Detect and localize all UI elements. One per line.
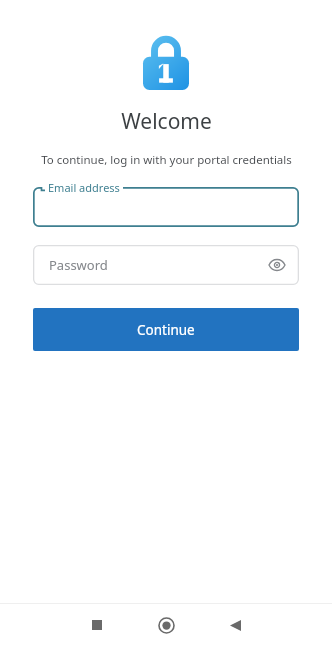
button[interactable]: Show password: [266, 254, 288, 276]
staticText: To continue, log in with your portal cre…: [41, 152, 292, 168]
button[interactable]: Back: [220, 610, 250, 640]
button[interactable]: Password: [33, 245, 299, 285]
staticText: Welcome: [121, 107, 212, 136]
staticText: Email address: [48, 180, 120, 195]
staticText: Password: [49, 256, 108, 274]
button[interactable]: Email address: [33, 187, 299, 227]
button[interactable]: Home: [150, 609, 182, 641]
button[interactable]: Continue: [33, 308, 299, 351]
button[interactable]: Recent apps: [82, 610, 112, 640]
staticText: Continue: [137, 321, 195, 339]
